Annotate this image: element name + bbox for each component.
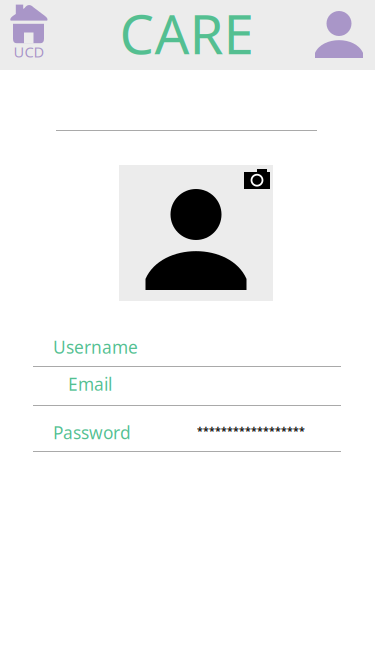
button[interactable]: UCD Home [0, 0, 58, 70]
button[interactable]: Change photo [244, 165, 273, 189]
staticText: CARE [119, 0, 253, 69]
button[interactable]: Password [33, 406, 341, 452]
button[interactable]: Profile [315, 0, 375, 70]
staticText: ****************** [197, 423, 305, 438]
staticText: UCD [13, 42, 44, 61]
staticText: Email [68, 372, 112, 395]
button[interactable]: Email [33, 367, 341, 406]
staticText: Username [53, 335, 138, 358]
staticText: Password [53, 421, 131, 444]
button[interactable]: Username [33, 328, 341, 367]
